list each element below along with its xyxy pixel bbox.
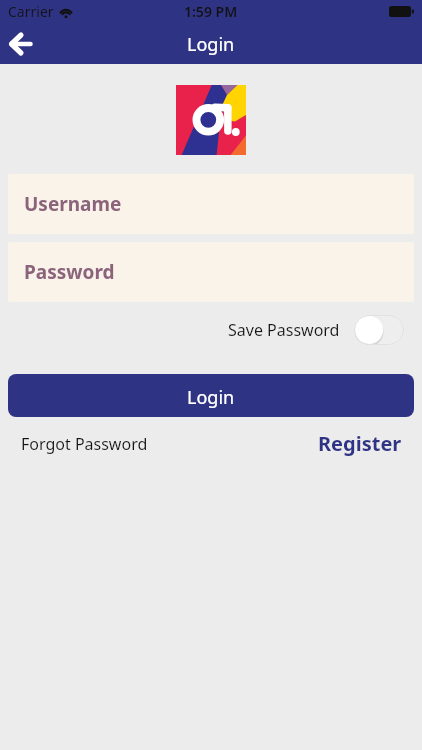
button[interactable]: Register: [318, 430, 402, 457]
staticText: Login: [187, 385, 235, 410]
staticText: Save Password: [228, 319, 340, 341]
button[interactable]: [4, 26, 38, 60]
staticText: Forgot Password: [21, 433, 148, 455]
button[interactable]: Login: [8, 374, 414, 417]
staticText: Login: [187, 32, 235, 57]
staticText: Carrier: [8, 2, 54, 21]
staticText: Password: [24, 259, 115, 285]
staticText: Register: [318, 430, 402, 457]
button[interactable]: [354, 315, 404, 345]
staticText: Username: [24, 191, 122, 217]
button[interactable]: Forgot Password: [21, 433, 148, 455]
button[interactable]: Username: [8, 174, 414, 234]
staticText: 1:59 PM: [184, 2, 238, 21]
button[interactable]: Password: [8, 242, 414, 302]
